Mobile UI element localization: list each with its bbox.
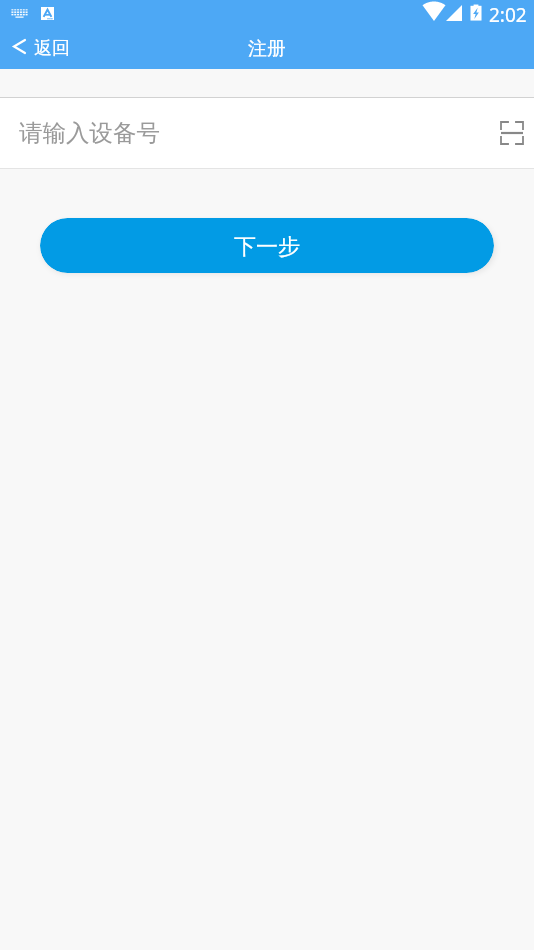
button[interactable]: 请输入设备号 [0,98,534,168]
staticText: 下一步 [234,233,300,261]
staticText: 请输入设备号 [19,118,160,148]
button[interactable]: 返回 [0,31,82,66]
staticText: 注册 [248,37,286,61]
staticText: 返回 [34,37,70,60]
button[interactable]: Scan [493,114,531,152]
button[interactable]: 下一步 [40,218,494,273]
staticText: 2:02 [489,2,527,28]
